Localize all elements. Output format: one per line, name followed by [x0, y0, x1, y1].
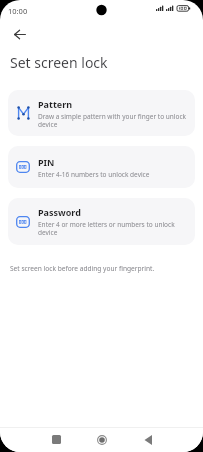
- staticText: Set screen lock before adding your finge…: [10, 264, 155, 273]
- button[interactable]: [87, 427, 117, 452]
- button[interactable]: [41, 427, 71, 452]
- button[interactable]: [8, 26, 32, 42]
- staticText: PIN: [38, 156, 55, 168]
- staticText: Password: [38, 206, 81, 218]
- staticText: Enter 4-16 numbers to unlock device: [38, 170, 150, 179]
- staticText: 10:00: [8, 6, 28, 16]
- button[interactable]: Password: [8, 198, 195, 245]
- button[interactable]: PIN: [8, 146, 195, 188]
- button[interactable]: [133, 427, 163, 452]
- staticText: Pattern: [38, 98, 73, 110]
- staticText: Draw a simple pattern with your finger t…: [38, 112, 187, 129]
- staticText: Enter 4 or more letters or numbers to un…: [38, 220, 175, 237]
- button[interactable]: Pattern: [8, 90, 195, 136]
- staticText: Set screen lock: [10, 53, 108, 72]
